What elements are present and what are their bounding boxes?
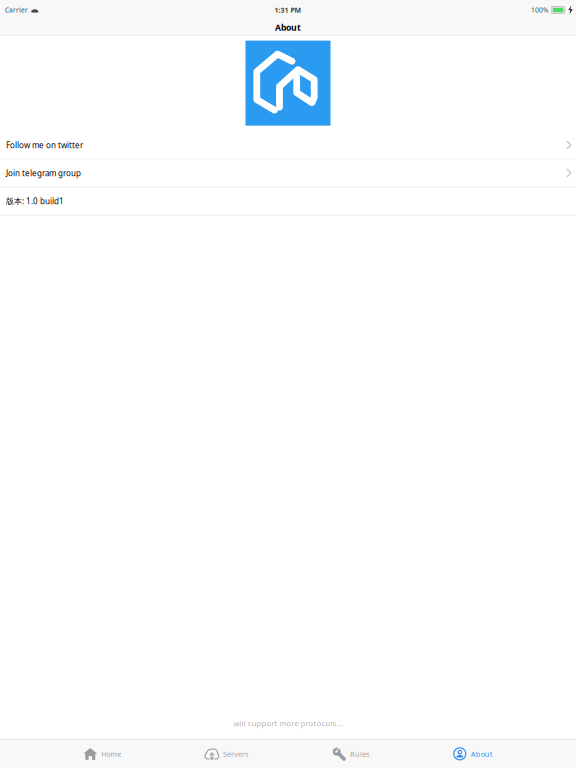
staticText: 1:31 PM xyxy=(274,5,301,15)
staticText: Rules xyxy=(350,749,370,759)
staticText: About xyxy=(275,22,301,33)
staticText: Follow me on twitter xyxy=(6,140,83,151)
staticText: will support more protocols... xyxy=(233,718,342,728)
staticText: 100% xyxy=(531,5,549,15)
button[interactable]: Join telegram group xyxy=(0,160,576,188)
button[interactable]: Rules xyxy=(332,740,370,768)
staticText: Home xyxy=(101,749,121,759)
staticText: About xyxy=(471,749,493,759)
button[interactable]: About xyxy=(453,740,493,768)
staticText: Join telegram group xyxy=(6,168,81,179)
staticText: Carrier xyxy=(5,5,28,15)
button[interactable]: Follow me on twitter xyxy=(0,132,576,160)
staticText: Servers xyxy=(223,749,249,759)
staticText: 版本: 1.0 build1 xyxy=(6,196,64,207)
button[interactable]: Servers xyxy=(205,740,249,768)
button[interactable]: Home xyxy=(83,740,121,768)
